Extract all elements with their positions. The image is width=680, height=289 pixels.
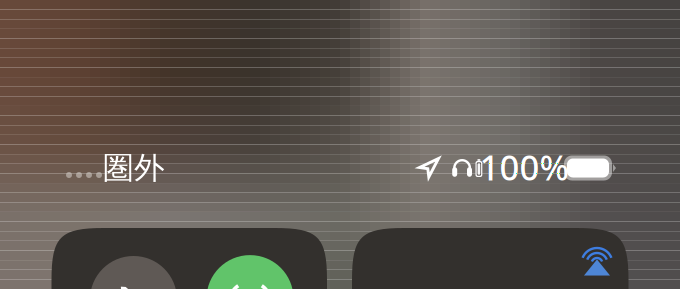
staticText: 圏外 (103, 149, 165, 187)
button[interactable]: Airplane Mode (90, 256, 177, 289)
button[interactable]: AirPlay (580, 243, 614, 277)
button[interactable]: Cellular Data (206, 255, 293, 289)
staticText: 100% (479, 144, 569, 190)
